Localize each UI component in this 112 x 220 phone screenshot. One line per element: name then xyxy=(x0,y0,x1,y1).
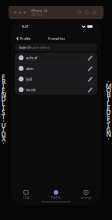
staticText: G xyxy=(106,125,111,134)
staticText: I xyxy=(107,121,110,130)
staticText: E xyxy=(106,103,110,112)
button[interactable]: nicole xyxy=(15,84,97,95)
staticText: O xyxy=(106,86,111,95)
staticText: M xyxy=(105,81,111,90)
button[interactable]: lydi xyxy=(15,74,97,84)
staticText: I xyxy=(107,95,110,103)
button[interactable]: achraf xyxy=(15,53,97,63)
staticText: E xyxy=(1,86,5,95)
staticText: I xyxy=(2,81,5,90)
staticText: S xyxy=(1,108,5,117)
staticText: · xyxy=(2,139,4,147)
button[interactable]: Profile xyxy=(41,190,71,199)
staticText: Friend list xyxy=(47,36,64,41)
staticText: N xyxy=(1,90,6,99)
staticText: Search xyxy=(19,45,31,50)
button[interactable]: Profile xyxy=(16,35,30,42)
staticText: I xyxy=(2,125,5,134)
staticText: alen xyxy=(26,66,33,71)
staticText: B xyxy=(106,90,110,99)
staticText: U xyxy=(1,121,6,130)
staticText: N xyxy=(106,130,111,139)
button[interactable]: Settings xyxy=(71,190,101,199)
staticText: Profile xyxy=(51,196,61,199)
staticText: I xyxy=(2,103,5,112)
staticText: D xyxy=(106,108,111,117)
staticText: · xyxy=(2,117,4,125)
staticText: iPhone 14 xyxy=(31,8,47,13)
staticText: R xyxy=(1,77,5,86)
button[interactable]: alen xyxy=(15,63,97,74)
staticText: F xyxy=(1,73,5,81)
staticText: · xyxy=(107,77,109,86)
staticText: 8:41 xyxy=(21,24,28,29)
staticText: iOS 16.2 xyxy=(31,13,43,17)
staticText: X xyxy=(1,134,5,143)
staticText: D xyxy=(1,95,6,103)
staticText: L xyxy=(1,99,5,108)
button[interactable]: Chat xyxy=(11,190,41,199)
staticText: S xyxy=(106,117,110,125)
staticText: L xyxy=(106,99,110,108)
staticText: T xyxy=(1,112,5,121)
staticText: · xyxy=(107,134,109,143)
staticText: Settings xyxy=(80,196,91,199)
staticText: U xyxy=(1,130,6,139)
staticText: username xyxy=(31,45,50,50)
staticText: achraf xyxy=(26,55,37,60)
staticText: Chat xyxy=(23,196,29,199)
staticText: nicole xyxy=(26,87,36,92)
staticText: Profile xyxy=(19,36,30,41)
staticText: lydi xyxy=(26,76,32,82)
staticText: E xyxy=(106,112,110,121)
